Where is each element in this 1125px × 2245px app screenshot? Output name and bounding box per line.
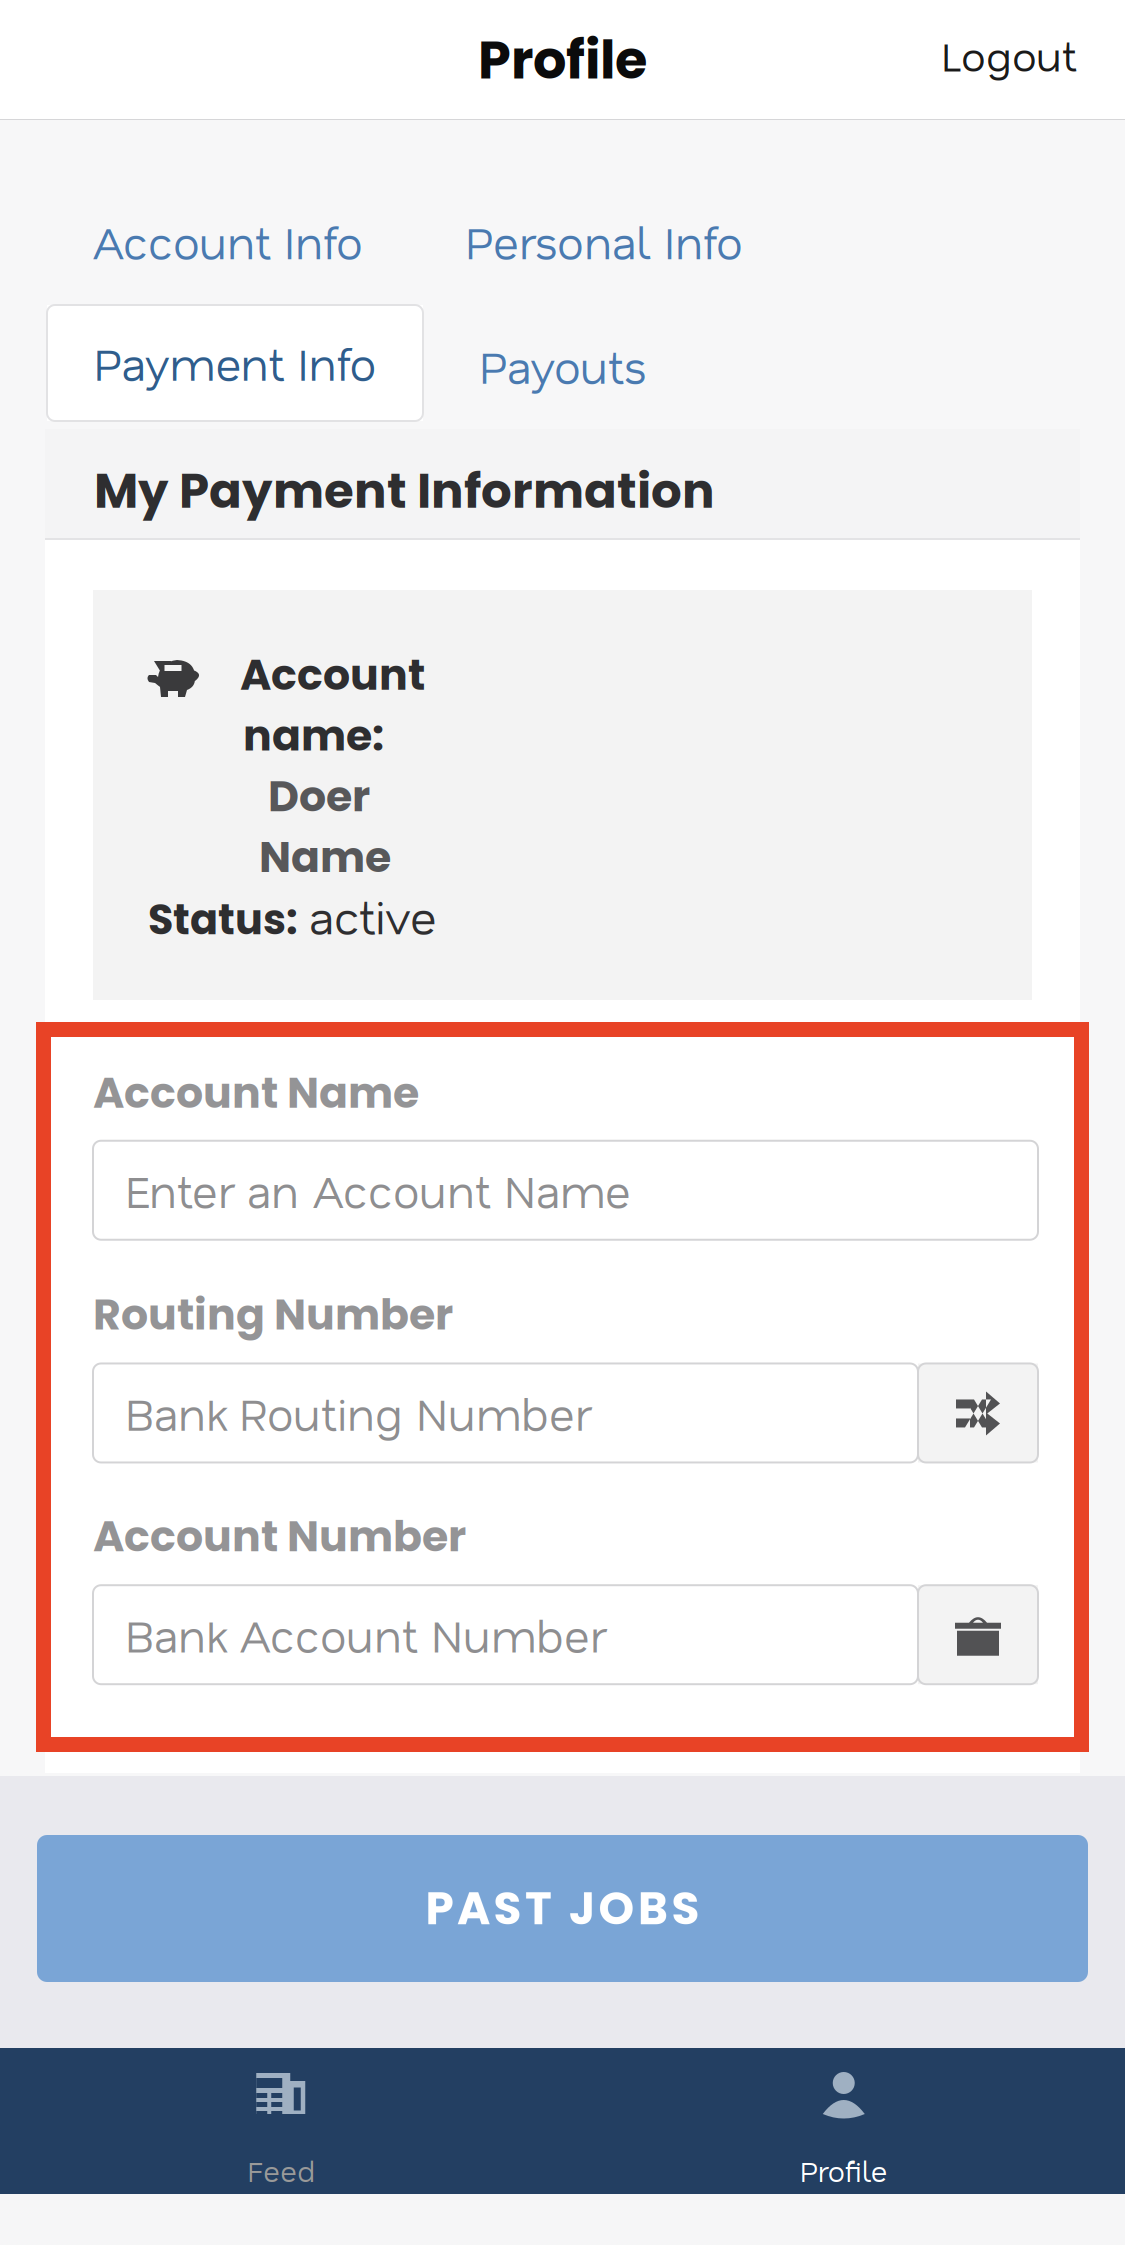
staticText: active bbox=[309, 886, 437, 946]
staticText: PAST JOBS bbox=[425, 1877, 699, 1940]
button[interactable]: Personal Info bbox=[465, 212, 743, 271]
staticText: Account Name bbox=[93, 1063, 419, 1123]
staticText: Logout bbox=[941, 28, 1077, 82]
button[interactable]: Account Info bbox=[92, 212, 363, 271]
staticText: My Payment Information bbox=[94, 457, 715, 525]
button[interactable]: Feed bbox=[0, 2048, 562, 2194]
staticText: Payouts bbox=[479, 337, 646, 395]
staticText: Name bbox=[259, 827, 391, 887]
button[interactable]: Payment Info bbox=[47, 305, 423, 421]
staticText: Account Number bbox=[93, 1506, 466, 1566]
staticText: Enter an Account Name bbox=[125, 1161, 631, 1219]
staticText: Account bbox=[240, 645, 425, 705]
staticText: Routing Number bbox=[93, 1285, 453, 1344]
button[interactable]: PAST JOBS bbox=[37, 1835, 1088, 1982]
staticText: Payment Info bbox=[93, 334, 376, 392]
button[interactable]: Profile bbox=[562, 2048, 1125, 2194]
staticText: Status: bbox=[148, 891, 298, 949]
staticText: Bank Account Number bbox=[125, 1606, 606, 1663]
staticText: Feed bbox=[247, 2152, 315, 2189]
staticText: Personal Info bbox=[465, 212, 743, 271]
staticText: Account Info bbox=[92, 212, 363, 271]
staticText: Doer bbox=[268, 766, 370, 826]
staticText: Profile bbox=[800, 2152, 888, 2189]
staticText: name: bbox=[243, 706, 384, 765]
staticText: Bank Routing Number bbox=[125, 1384, 591, 1442]
button[interactable]: Logout bbox=[917, 0, 1125, 120]
button[interactable]: Payouts bbox=[451, 311, 674, 421]
button[interactable]: Generate routing number bbox=[918, 1363, 1038, 1462]
button[interactable]: Account number options bbox=[918, 1585, 1038, 1684]
staticText: Profile bbox=[478, 23, 647, 97]
